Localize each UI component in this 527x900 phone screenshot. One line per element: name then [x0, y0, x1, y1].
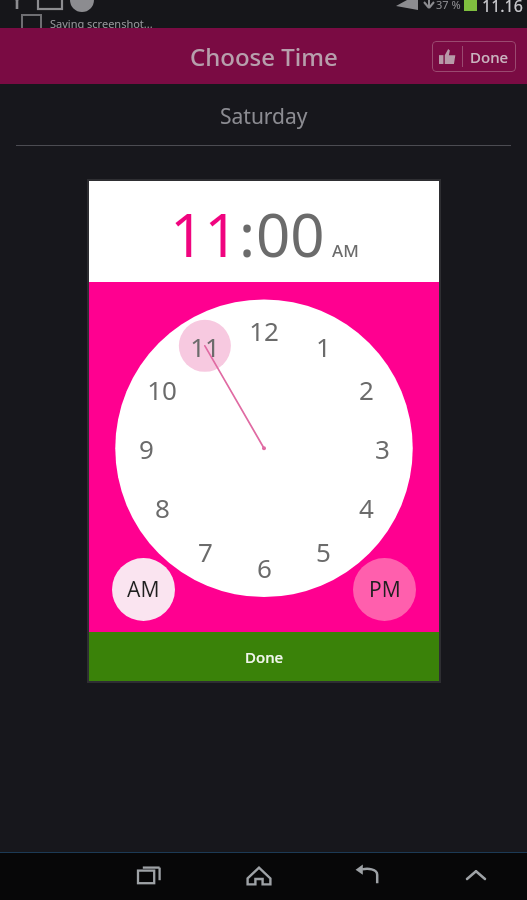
staticText: Saturday — [220, 102, 308, 131]
button[interactable]: 2 — [343, 369, 389, 409]
button[interactable]: Back — [338, 852, 396, 900]
staticText: Done — [470, 47, 509, 67]
staticText: 4 — [359, 490, 374, 525]
button[interactable]: 1 — [300, 326, 346, 366]
button[interactable]: 10 — [139, 369, 185, 409]
button[interactable]: 00 — [256, 193, 325, 275]
button[interactable]: 6 — [241, 547, 287, 587]
staticText: 1 — [316, 329, 331, 364]
staticText: 6 — [257, 550, 272, 585]
button[interactable]: 5 — [300, 531, 346, 571]
staticText: AM — [127, 575, 160, 604]
staticText: 5 — [316, 534, 331, 569]
button[interactable]: 11 — [182, 326, 228, 366]
button[interactable]: Done — [89, 632, 439, 681]
staticText: 11 — [190, 329, 220, 364]
staticText: 8 — [155, 490, 170, 525]
button[interactable]: 8 — [139, 487, 185, 527]
staticText: 10 — [147, 372, 177, 407]
button[interactable]: Recent apps — [121, 852, 179, 900]
button[interactable]: 12 — [241, 310, 287, 350]
button[interactable]: 3 — [359, 428, 405, 468]
staticText: 37 % — [436, 0, 461, 12]
staticText: 11.16 — [482, 0, 523, 17]
staticText: 2 — [359, 372, 374, 407]
staticText: Choose Time — [190, 40, 338, 73]
button[interactable]: 7 — [182, 531, 228, 571]
staticText: 12 — [249, 313, 279, 348]
button[interactable]: AM — [332, 239, 359, 262]
button[interactable]: AM — [112, 558, 175, 621]
button[interactable]: 4 — [343, 487, 389, 527]
staticText: 9 — [139, 431, 154, 466]
button[interactable]: PM — [353, 558, 416, 621]
staticText: PM — [369, 575, 401, 604]
staticText: 7 — [198, 534, 213, 569]
button[interactable]: 11 — [170, 193, 239, 275]
staticText: Saving screenshot... — [50, 16, 153, 31]
button[interactable]: 9 — [123, 428, 169, 468]
button[interactable]: Done — [432, 41, 516, 72]
staticText: Done — [245, 647, 284, 667]
staticText: : — [239, 193, 256, 275]
button[interactable]: Home — [230, 852, 288, 900]
staticText: 3 — [375, 431, 390, 466]
button[interactable]: Expand — [447, 852, 505, 900]
